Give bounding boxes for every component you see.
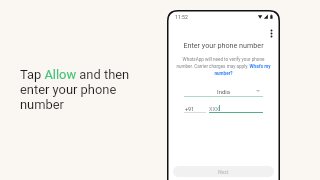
staticText: Next: [218, 169, 229, 175]
staticText: Tap Allow and then enter your phone numb…: [20, 67, 142, 112]
staticText: WhatsApp will need to verify your phone …: [169, 57, 278, 77]
staticText: +91: [185, 106, 195, 112]
staticText: Enter your phone number: [167, 41, 280, 49]
button[interactable]: India: [184, 80, 263, 98]
staticText: XXX: [209, 106, 220, 112]
staticText: India: [184, 89, 263, 96]
staticText: 11:52: [175, 14, 188, 20]
button[interactable]: More options: [263, 25, 279, 41]
button[interactable]: Next: [173, 166, 274, 177]
